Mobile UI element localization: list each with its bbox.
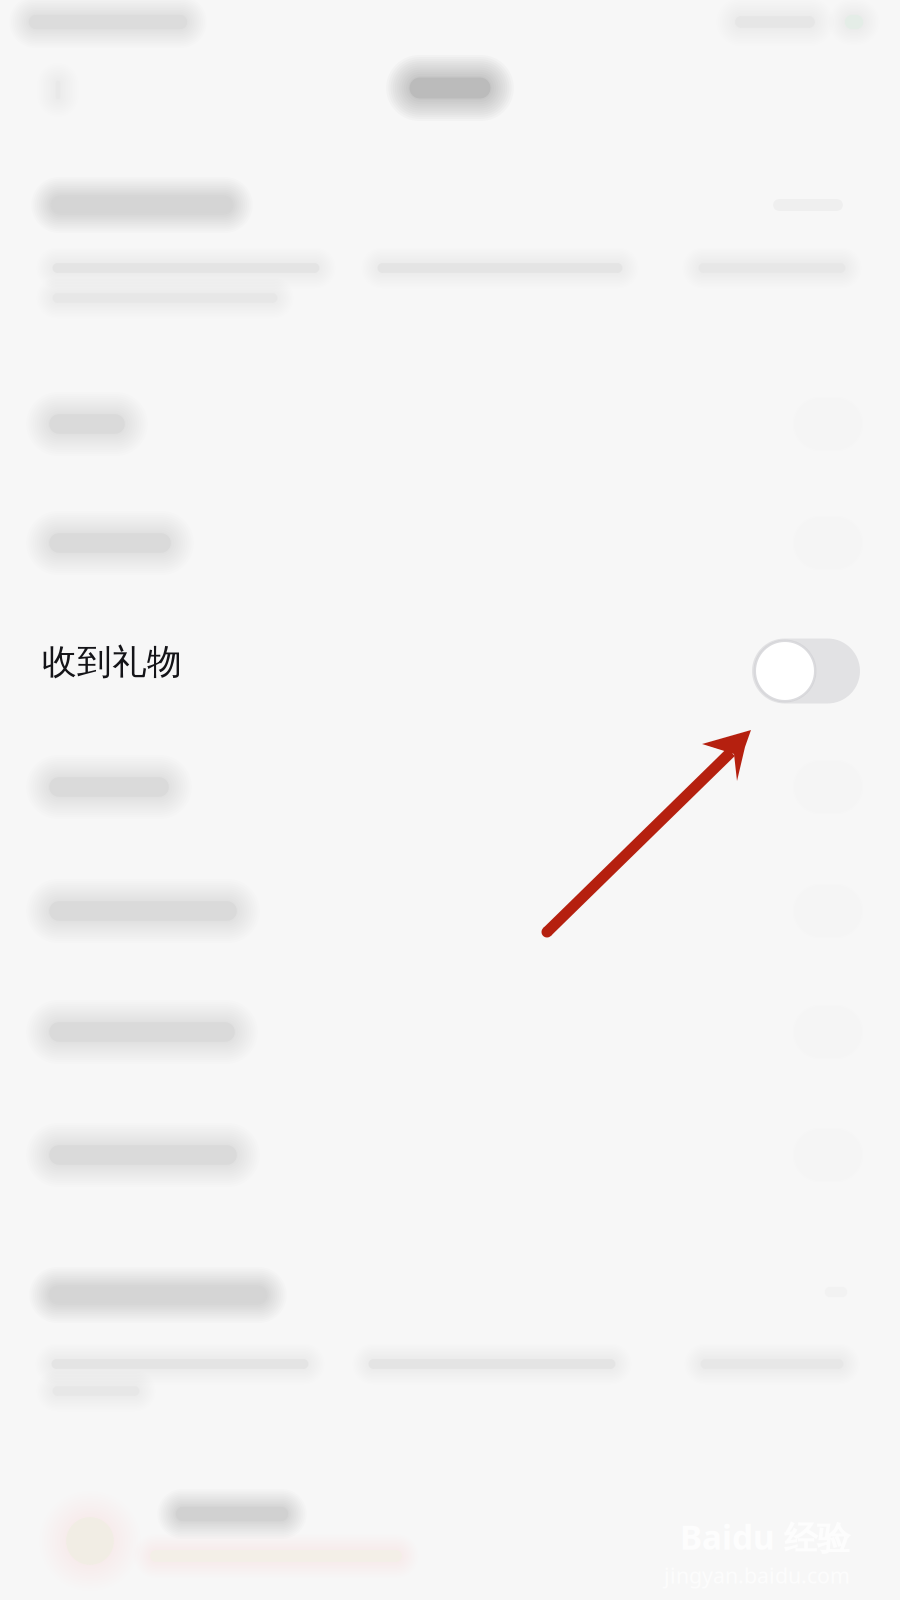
button[interactable]: 返回 — [0, 0, 900, 1600]
staticText: 收到礼物 — [42, 641, 182, 683]
button[interactable]: 通知设置项 — [0, 0, 900, 1600]
button[interactable]: 推广卡片 — [0, 0, 900, 1600]
button[interactable]: 收到礼物 开关 — [752, 638, 860, 703]
button[interactable]: 通知设置项 — [0, 0, 900, 1600]
button[interactable]: 收到礼物 — [0, 0, 900, 1600]
button[interactable]: 通知设置项 — [0, 0, 900, 1600]
button[interactable]: 通知设置项 — [0, 0, 900, 1600]
button[interactable]: 通知设置项 — [0, 0, 900, 1600]
button[interactable]: 通知设置项 — [0, 0, 900, 1600]
